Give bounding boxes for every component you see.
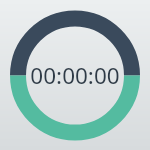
- button[interactable]: Start or stop stopwatch: [0, 0, 150, 150]
- staticText: 00:00:00: [30, 60, 120, 91]
